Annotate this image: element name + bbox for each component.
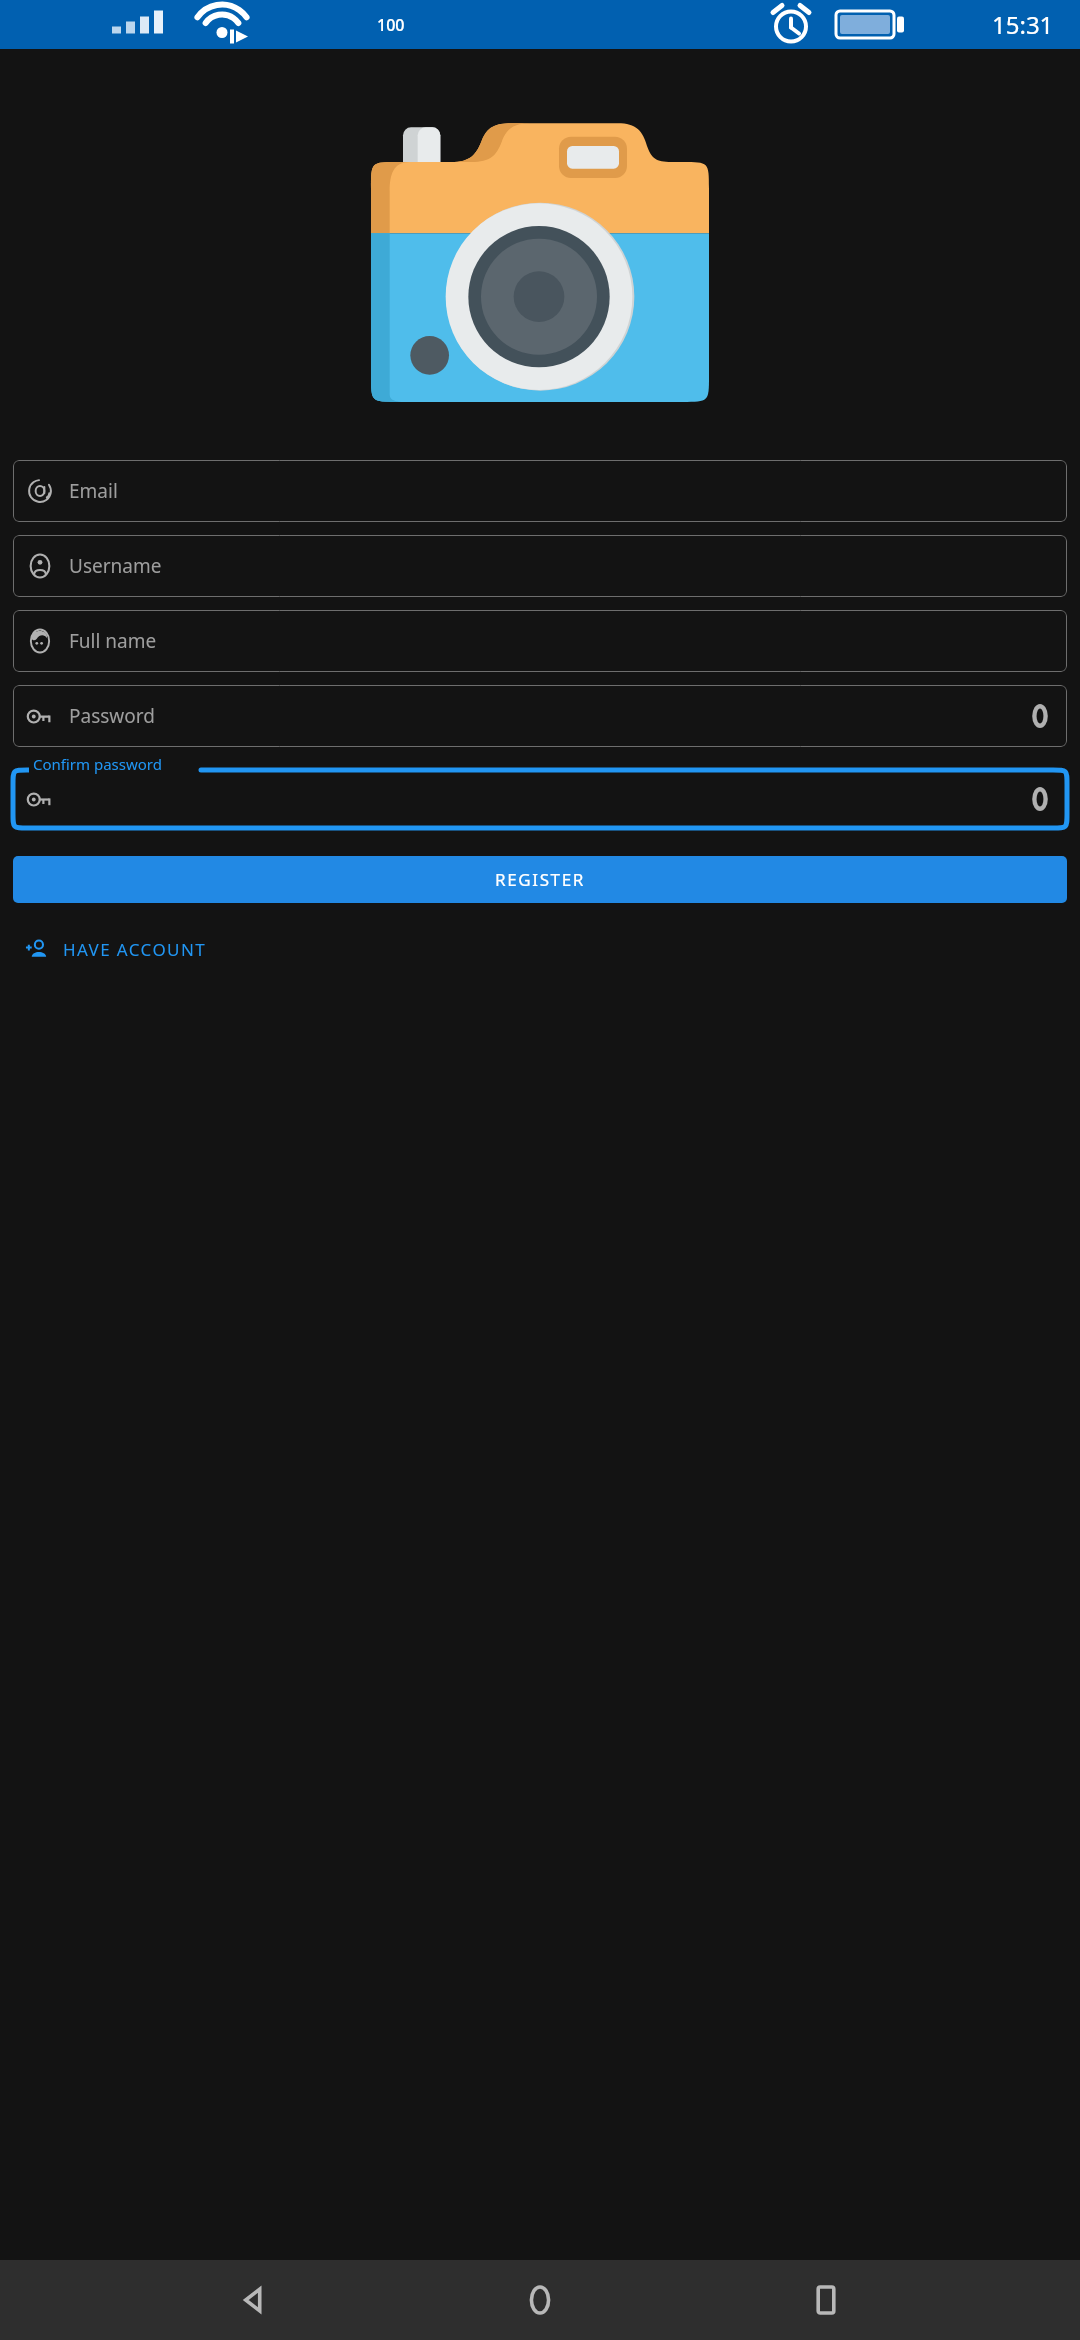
button[interactable]: Username: [13, 535, 1067, 597]
button[interactable]: REGISTER: [13, 856, 1067, 903]
button[interactable]: Home: [508, 2268, 572, 2332]
button[interactable]: HAVE ACCOUNT: [13, 927, 219, 971]
button[interactable]: Password: [13, 685, 1067, 747]
staticText: Full name: [69, 628, 1053, 654]
staticText: 15:31: [992, 8, 1054, 41]
staticText: Email: [69, 478, 1053, 504]
button[interactable]: Email: [13, 460, 1067, 522]
button[interactable]: Confirm password: [13, 760, 1067, 828]
button[interactable]: Back: [222, 2268, 286, 2332]
staticText: Confirm password: [33, 754, 162, 774]
staticText: HAVE ACCOUNT: [63, 938, 207, 961]
button[interactable]: Recent apps: [794, 2268, 858, 2332]
button[interactable]: Full name: [13, 610, 1067, 672]
staticText: Username: [69, 553, 1053, 579]
staticText: REGISTER: [495, 868, 585, 891]
staticText: 100: [377, 14, 405, 36]
staticText: Password: [69, 703, 1027, 729]
